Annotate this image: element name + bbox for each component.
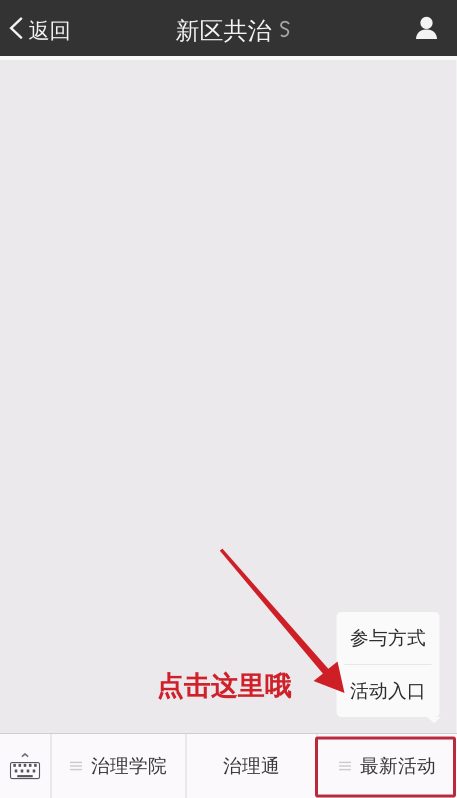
staticText: 新区共治 bbox=[175, 16, 271, 46]
staticText: 参与方式 bbox=[350, 626, 426, 649]
staticText: 返回 bbox=[28, 18, 70, 44]
button[interactable]: 治理通 bbox=[186, 734, 316, 798]
staticText: 点击这里哦 bbox=[156, 670, 291, 703]
button[interactable]: 参与方式 bbox=[336, 612, 439, 664]
staticText: 最新活动 bbox=[360, 754, 436, 777]
staticText: 活动入口 bbox=[350, 679, 426, 702]
button[interactable]: 治理学院 bbox=[51, 734, 185, 798]
staticText: 治理学院 bbox=[91, 754, 167, 777]
staticText: 治理通 bbox=[223, 754, 280, 777]
button[interactable]: Account bbox=[415, 0, 457, 56]
button[interactable]: 最新活动 bbox=[317, 734, 457, 798]
button[interactable]: 返回 bbox=[0, 0, 82, 56]
button[interactable]: 活动入口 bbox=[336, 665, 439, 717]
button[interactable]: Keyboard bbox=[0, 734, 50, 798]
